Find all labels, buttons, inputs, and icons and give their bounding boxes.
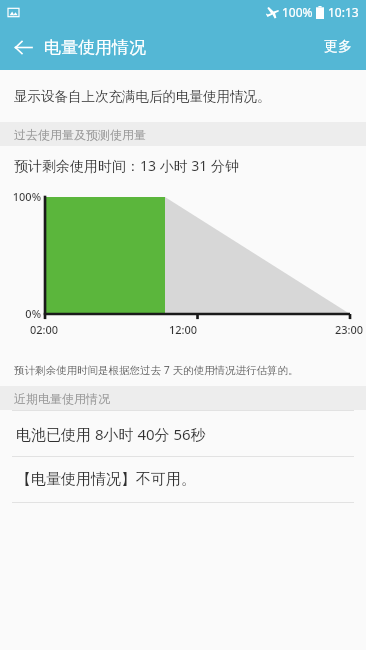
staticText: 【电量使用情况】不可用。 (16, 470, 196, 489)
button[interactable]: 更多 (310, 24, 366, 70)
staticText: 100% (3, 189, 41, 204)
button[interactable]: 【电量使用情况】不可用。 (0, 457, 366, 502)
staticText: 预计剩余使用时间：13 小时 31 分钟 (14, 156, 239, 175)
staticText: 02:00 (30, 322, 59, 337)
staticText: 23:00 (335, 322, 364, 337)
staticText: 10:13 (328, 4, 359, 20)
button[interactable]: 返回 (0, 24, 46, 70)
staticText: 显示设备自上次充满电后的电量使用情况。 (14, 88, 271, 105)
staticText: 0% (3, 306, 41, 321)
staticText: 100% (282, 4, 313, 20)
staticText: 更多 (324, 38, 352, 56)
staticText: 过去使用量及预测使用量 (14, 127, 146, 142)
button[interactable]: 电池已使用 8小时 40分 56秒 (0, 411, 366, 456)
staticText: 近期电量使用情况 (14, 391, 110, 406)
staticText: 预计剩余使用时间是根据您过去 7 天的使用情况进行估算的。 (14, 363, 299, 377)
staticText: 电量使用情况 (44, 37, 146, 58)
staticText: 12:00 (169, 322, 198, 337)
staticText: 电池已使用 8小时 40分 56秒 (16, 424, 206, 444)
